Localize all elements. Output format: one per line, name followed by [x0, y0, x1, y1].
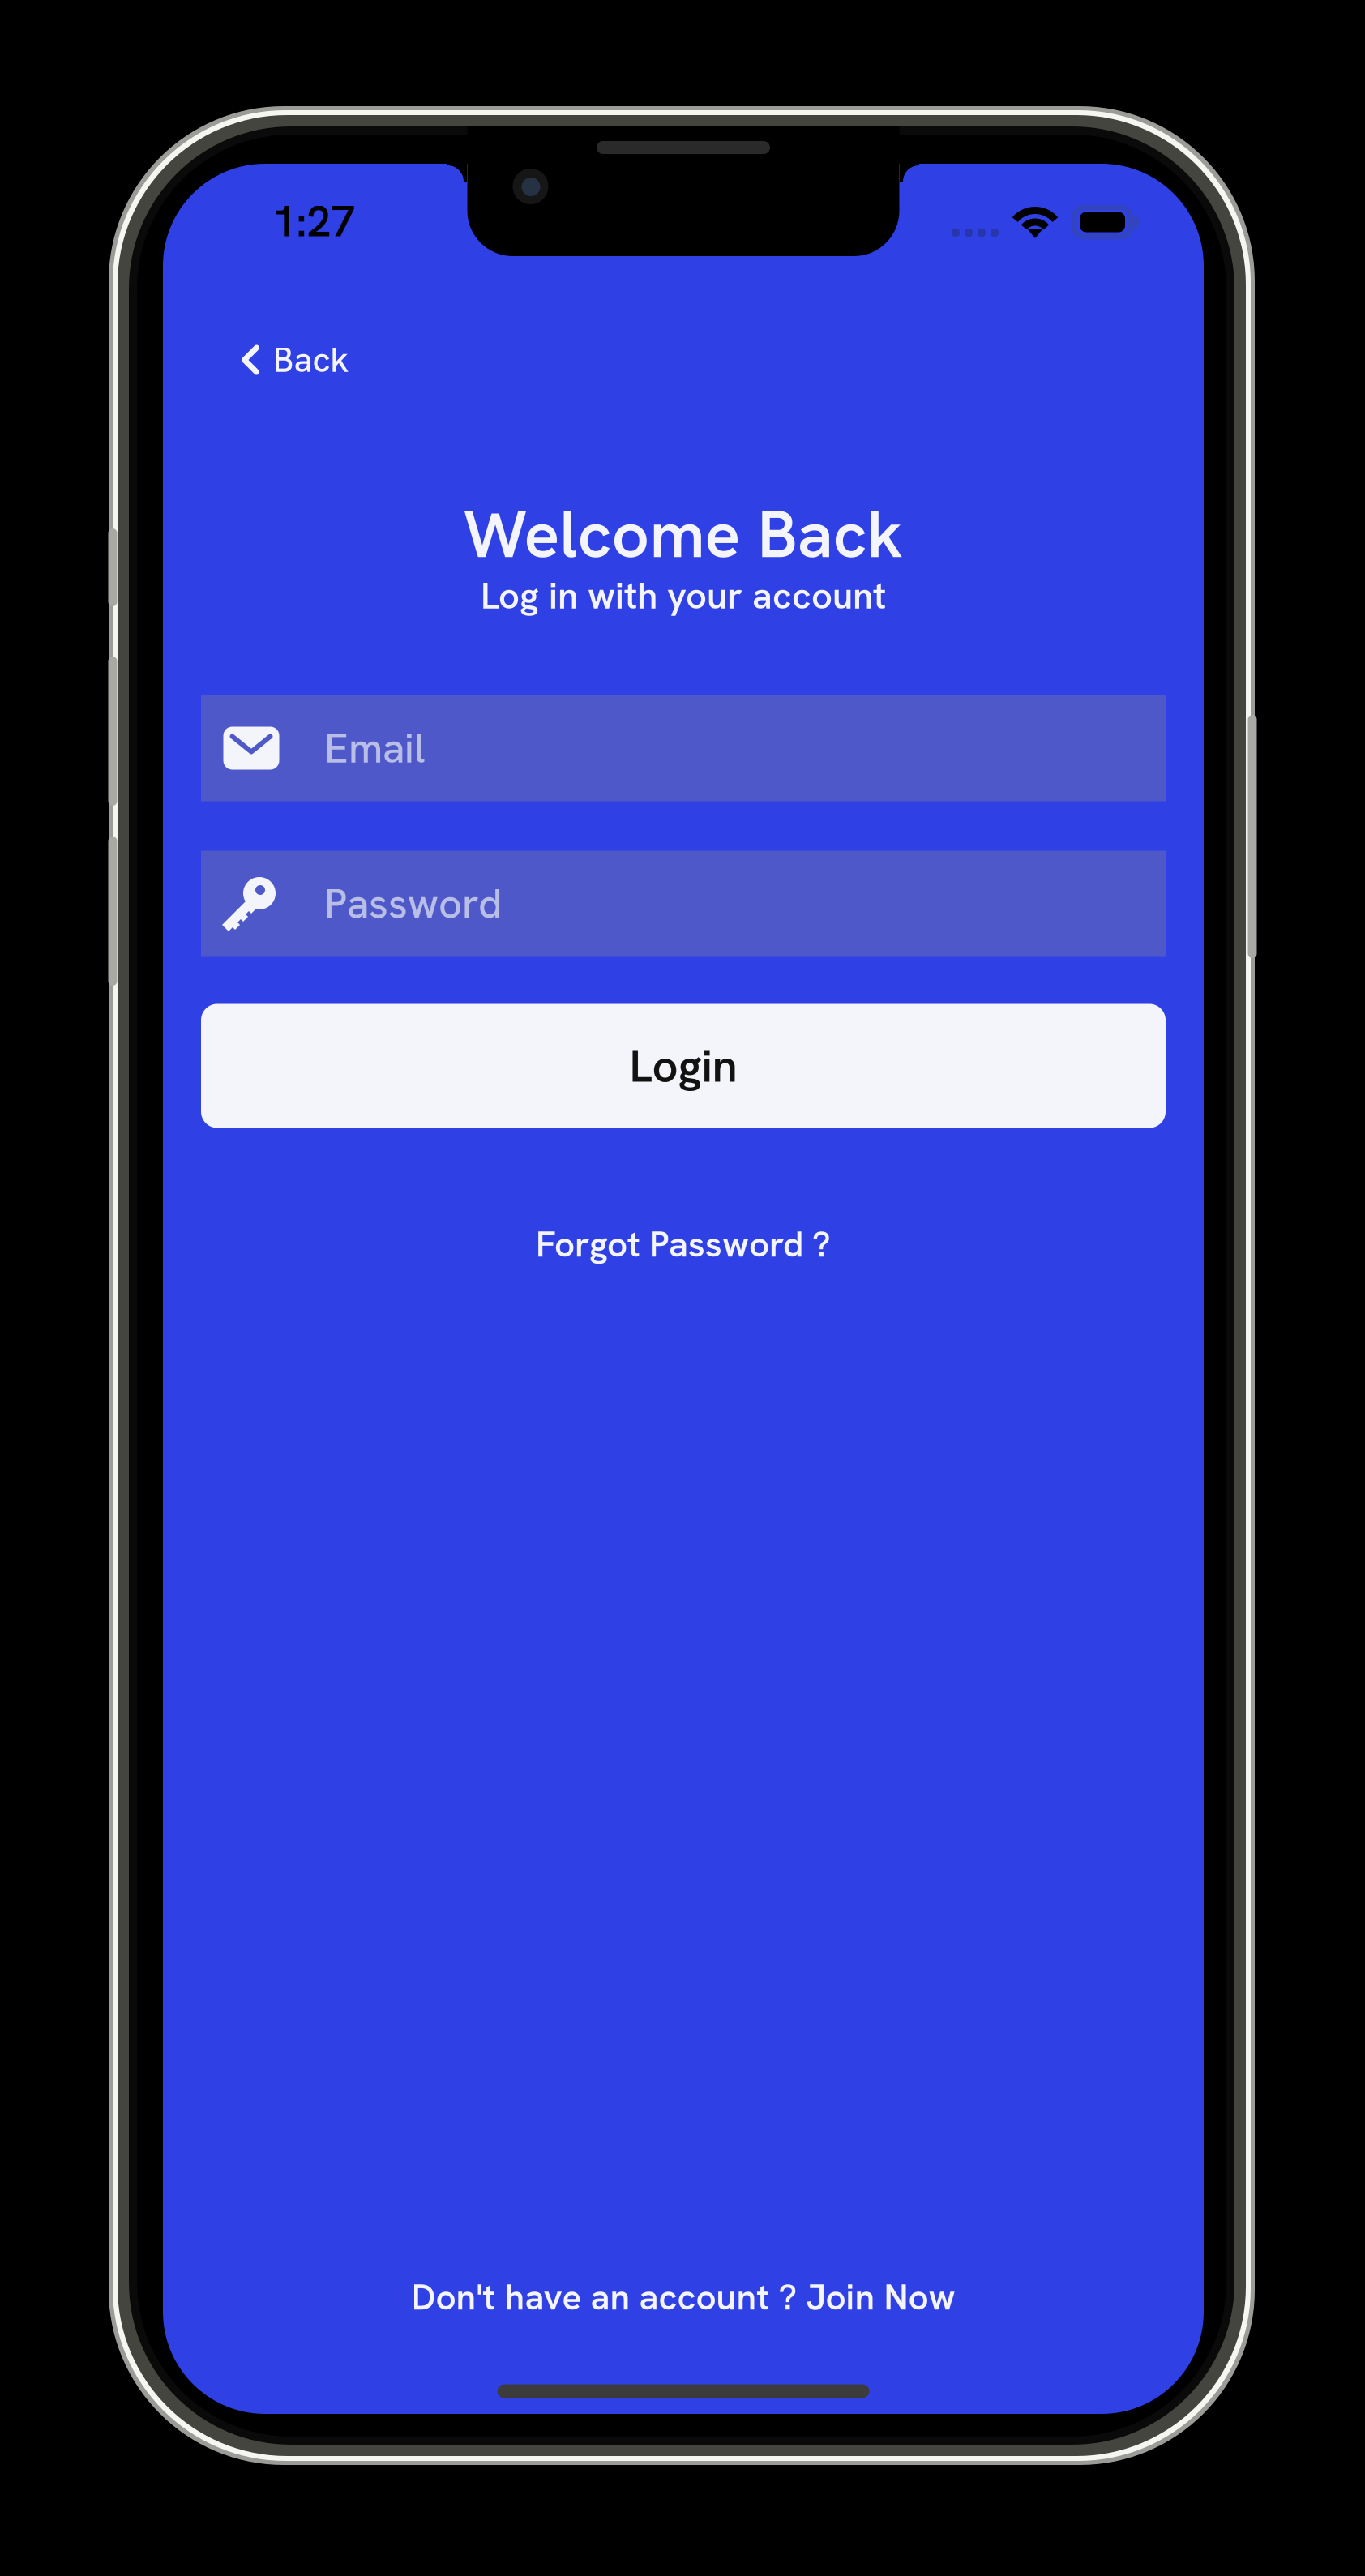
- button[interactable]: Forgot Password ?: [516, 1208, 850, 1280]
- staticText: Password: [324, 877, 503, 931]
- staticText: Forgot Password ?: [536, 1221, 831, 1267]
- staticText: Log in with your account: [481, 572, 886, 620]
- button[interactable]: Email: [201, 695, 1166, 801]
- staticText: Welcome Back: [463, 491, 903, 577]
- staticText: Don't have an account ? Join Now: [411, 2274, 955, 2320]
- button[interactable]: Don't have an account ? Join Now: [392, 2261, 975, 2333]
- staticText: Back: [273, 337, 349, 382]
- button[interactable]: Password: [201, 851, 1166, 957]
- staticText: Email: [324, 721, 426, 775]
- staticText: 1:27: [272, 193, 355, 249]
- button[interactable]: Login: [201, 1004, 1166, 1128]
- button[interactable]: Back: [227, 320, 364, 400]
- staticText: Login: [629, 1036, 737, 1095]
